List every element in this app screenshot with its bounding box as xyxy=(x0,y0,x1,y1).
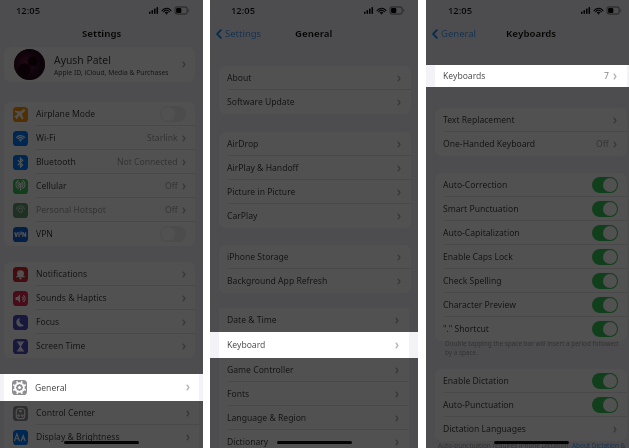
staticText: One-Handed Keyboard xyxy=(443,138,596,150)
staticText: Text Replacement xyxy=(443,114,613,126)
staticText: iPhone Storage xyxy=(227,251,397,263)
staticText: Off xyxy=(165,204,178,216)
button[interactable]: AirDrop xyxy=(219,132,411,156)
button[interactable]: Settings xyxy=(216,27,262,40)
staticText: Background App Refresh xyxy=(227,275,397,287)
button[interactable]: Switch on xyxy=(592,373,618,389)
button[interactable]: Software Update xyxy=(219,90,411,114)
staticText: Dictation Languages xyxy=(443,423,613,435)
staticText: CarPlay xyxy=(227,210,397,222)
staticText: Dictionary xyxy=(227,436,395,448)
button[interactable]: Personal Hotspot xyxy=(4,198,195,222)
button[interactable]: Ayush Patel xyxy=(4,47,195,82)
staticText: Wi-Fi xyxy=(36,132,147,144)
button[interactable]: Screen Time xyxy=(4,334,195,358)
button[interactable]: Game Controller xyxy=(219,358,409,382)
button[interactable]: CarPlay xyxy=(219,204,411,228)
button[interactable]: About xyxy=(219,66,411,90)
button[interactable]: Switch on xyxy=(592,321,618,337)
button[interactable]: Keyboard xyxy=(210,332,418,358)
button[interactable]: One-Handed Keyboard xyxy=(435,132,627,156)
staticText: Personal Hotspot xyxy=(36,204,165,216)
staticText: Bluetooth xyxy=(36,156,117,168)
staticText: Off xyxy=(596,138,609,150)
staticText: 7 xyxy=(604,70,609,82)
button[interactable]: Dictation Languages xyxy=(435,417,627,441)
button[interactable]: Text Replacement xyxy=(435,108,627,132)
staticText: Ayush Patel xyxy=(54,53,111,67)
staticText: Double tapping the space bar will insert… xyxy=(445,339,619,357)
staticText: Auto-Punctuation xyxy=(443,399,592,411)
staticText: Airplane Mode xyxy=(36,108,160,120)
button[interactable]: Date & Time xyxy=(219,308,409,332)
button[interactable]: Auto-Capitalization xyxy=(435,221,627,245)
button[interactable]: Character Preview xyxy=(435,293,627,317)
button[interactable]: "." Shortcut xyxy=(435,317,627,341)
button[interactable]: Sounds & Haptics xyxy=(4,286,195,310)
button[interactable]: Language & Region xyxy=(219,406,409,430)
staticText: Not Connected xyxy=(117,156,178,168)
button[interactable]: VPN xyxy=(4,222,195,246)
button[interactable]: Picture in Picture xyxy=(219,180,411,204)
button[interactable]: Bluetooth xyxy=(4,150,195,174)
button[interactable]: Enable Dictation xyxy=(435,369,627,393)
staticText: Character Preview xyxy=(443,299,592,311)
button[interactable]: Display & Brightness xyxy=(4,425,199,448)
button[interactable]: Switch on xyxy=(592,297,618,313)
staticText: Auto-Correction xyxy=(443,179,592,191)
button[interactable]: Switch on xyxy=(592,201,618,217)
button[interactable]: iPhone Storage xyxy=(219,245,411,269)
staticText: Auto-Capitalization xyxy=(443,227,592,239)
staticText: Focus xyxy=(36,316,182,328)
staticText: Fonts xyxy=(227,388,395,400)
staticText: Display & Brightness xyxy=(36,431,186,443)
button[interactable]: Fonts xyxy=(219,382,409,406)
button[interactable]: Background App Refresh xyxy=(219,269,411,293)
button[interactable]: Focus xyxy=(4,310,195,334)
staticText: General xyxy=(35,382,186,394)
staticText: 12:05 xyxy=(448,4,473,17)
staticText: Enable Dictation xyxy=(443,375,592,387)
staticText: Smart Punctuation xyxy=(443,203,592,215)
button[interactable]: Switch on xyxy=(592,397,618,413)
staticText: Notifications xyxy=(36,268,182,280)
staticText: Keyboard xyxy=(227,339,395,351)
button[interactable]: Enable Caps Lock xyxy=(435,245,627,269)
staticText: Control Center xyxy=(36,407,186,419)
button[interactable]: Switch on xyxy=(592,273,618,289)
staticText: Settings xyxy=(225,27,262,40)
button[interactable]: AirPlay & Handoff xyxy=(219,156,411,180)
staticText: About Dictation & xyxy=(572,441,626,448)
button[interactable]: Auto-Correction xyxy=(435,173,627,197)
staticText: Sounds & Haptics xyxy=(36,292,182,304)
button[interactable]: Cellular xyxy=(4,174,195,198)
staticText: Auto-punctuation requires iPhone Dictati… xyxy=(438,441,572,448)
staticText: Date & Time xyxy=(227,314,395,326)
button[interactable]: Switch on xyxy=(592,225,618,241)
staticText: AirDrop xyxy=(227,138,397,150)
button[interactable]: Auto-Punctuation xyxy=(435,393,627,417)
button[interactable]: Dictionary xyxy=(219,430,409,448)
staticText: Starlink xyxy=(147,132,178,144)
staticText: 12:05 xyxy=(231,4,256,17)
button[interactable]: Keyboards xyxy=(426,65,629,87)
staticText: Keyboards xyxy=(506,27,557,40)
button[interactable]: Switch on xyxy=(592,249,618,265)
staticText: Cellular xyxy=(36,180,165,192)
button[interactable]: Wi-Fi xyxy=(4,126,195,150)
button[interactable]: Notifications xyxy=(4,262,195,286)
staticText: Settings xyxy=(82,27,122,40)
staticText: AirPlay & Handoff xyxy=(227,162,397,174)
button[interactable]: Smart Punctuation xyxy=(435,197,627,221)
staticText: Check Spelling xyxy=(443,275,592,287)
button[interactable]: General xyxy=(0,374,203,401)
button[interactable]: Airplane Mode xyxy=(4,102,195,126)
button[interactable]: Switch on xyxy=(592,177,618,193)
button[interactable]: General xyxy=(432,27,477,40)
button[interactable]: Check Spelling xyxy=(435,269,627,293)
staticText: Off xyxy=(165,180,178,192)
staticText: Apple ID, iCloud, Media & Purchases xyxy=(54,68,169,77)
button[interactable]: Control Center xyxy=(4,401,199,425)
